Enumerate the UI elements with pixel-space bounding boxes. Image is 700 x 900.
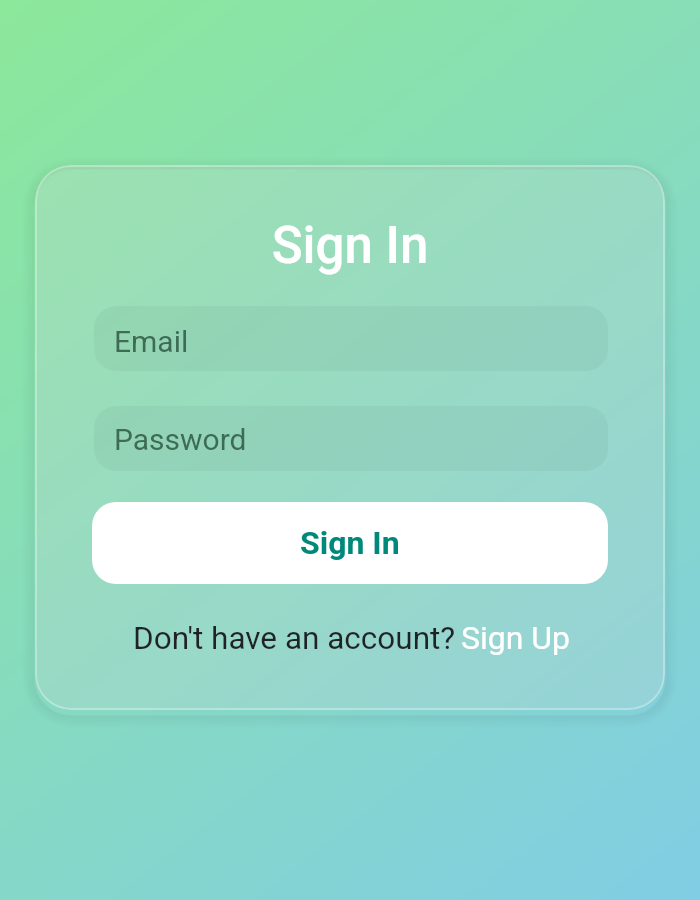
button[interactable]: Password [94,406,608,471]
button[interactable]: Email [94,306,608,371]
staticText: Don't have an account? [133,620,456,657]
staticText: Sign In [35,216,665,276]
staticText: Sign In [300,524,400,562]
button[interactable]: Sign Up [461,619,571,657]
button[interactable]: Sign In [92,502,608,584]
staticText: Password [114,422,247,457]
staticText: Email [114,324,189,359]
